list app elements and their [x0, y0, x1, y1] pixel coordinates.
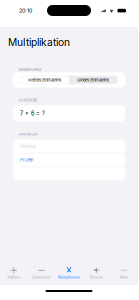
button[interactable]: Division: [83, 267, 110, 279]
button[interactable]: Subtraktion: [28, 267, 55, 279]
staticText: Prüfen: [20, 157, 34, 163]
staticText: 20:10: [19, 7, 32, 14]
button[interactable]: Lösung: [13, 139, 125, 153]
staticText: Mehr: [120, 275, 128, 279]
staticText: Lösung: [20, 143, 36, 149]
staticText: ANTWORT: [19, 132, 38, 136]
button[interactable]: Prüfen: [13, 153, 125, 167]
button[interactable]: Multiplikation: [55, 267, 83, 279]
staticText: Großes Einmaleins: [77, 77, 109, 82]
staticText: 7 × 6 = ?: [20, 110, 45, 117]
staticText: Division: [90, 275, 103, 279]
staticText: Addition: [7, 275, 20, 279]
button[interactable]: Addition: [0, 267, 28, 279]
button[interactable]: Großes Einmaleins: [69, 76, 117, 84]
staticText: EINMALEINS: [19, 67, 41, 72]
staticText: Multiplikation: [58, 275, 80, 279]
button[interactable]: Mehr: [110, 267, 138, 279]
staticText: Subtraktion: [32, 275, 50, 279]
button[interactable]: Kleines Einmaleins: [20, 76, 69, 84]
staticText: AUFGABE: [19, 98, 37, 102]
staticText: Multiplikation: [8, 36, 70, 48]
staticText: Kleines Einmaleins: [28, 77, 61, 82]
